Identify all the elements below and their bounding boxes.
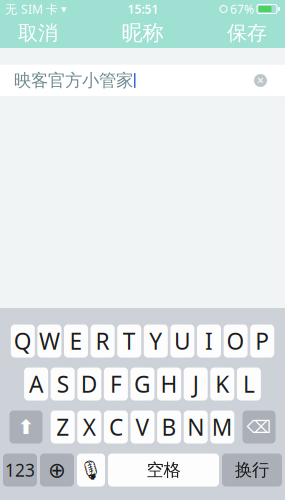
button[interactable]: U [170, 324, 194, 357]
button[interactable]: G [130, 367, 154, 400]
button[interactable]: Shift [9, 410, 42, 443]
button[interactable]: 换行 [222, 453, 282, 486]
button[interactable]: Delete [242, 410, 275, 443]
staticText: B [162, 412, 177, 442]
button[interactable]: F [104, 367, 128, 400]
staticText: S [57, 369, 69, 399]
button[interactable]: Q [11, 324, 35, 357]
button[interactable]: K [210, 367, 234, 400]
button[interactable]: L [237, 367, 261, 400]
button[interactable]: P [250, 324, 274, 357]
staticText: ✕ [256, 75, 264, 86]
button[interactable]: D [77, 367, 101, 400]
button[interactable]: V [130, 410, 154, 443]
button[interactable]: W [37, 324, 61, 357]
button[interactable]: M [210, 410, 234, 443]
button[interactable]: 取消 [6, 15, 70, 51]
staticText: 无 SIM 卡 [5, 1, 58, 17]
staticText: Y [149, 326, 162, 356]
button[interactable]: T [117, 324, 141, 357]
staticText: 映客官方小管家 [14, 70, 133, 91]
staticText: N [187, 412, 204, 442]
staticText: Z [56, 412, 69, 442]
button[interactable]: Next keyboard [40, 453, 74, 486]
staticText: O [227, 326, 245, 356]
staticText: Q [14, 326, 32, 356]
staticText: G [134, 369, 151, 399]
staticText: E [69, 326, 82, 356]
button[interactable]: A [24, 367, 48, 400]
staticText: ▾ [61, 3, 66, 15]
staticText: 🎙 [79, 459, 103, 481]
staticText: 空格 [146, 459, 180, 481]
staticText: U [174, 326, 191, 356]
staticText: K [215, 369, 229, 399]
staticText: R [96, 326, 110, 356]
staticText: I [205, 326, 213, 356]
button[interactable]: Dictation [77, 453, 105, 486]
staticText: X [83, 412, 96, 442]
staticText: 15:51 [127, 1, 158, 17]
staticText: 67% [230, 1, 254, 17]
staticText: ⌫ [246, 417, 271, 437]
staticText: C [109, 412, 123, 442]
staticText: P [255, 326, 269, 356]
staticText: 取消 [18, 21, 58, 45]
staticText: L [243, 369, 255, 399]
button[interactable]: C [104, 410, 128, 443]
button[interactable]: E [64, 324, 88, 357]
button[interactable]: Y [144, 324, 168, 357]
button[interactable]: Z [51, 410, 75, 443]
staticText: ⊕ [48, 458, 66, 482]
button[interactable]: 映客官方小管家 [0, 64, 285, 96]
button[interactable]: X [77, 410, 101, 443]
button[interactable]: R [91, 324, 115, 357]
button[interactable]: 保存 [215, 15, 279, 51]
staticText: A [29, 369, 43, 399]
button[interactable]: O [224, 324, 248, 357]
button[interactable]: S [51, 367, 75, 400]
button[interactable]: B [157, 410, 181, 443]
staticText: ⬆ [17, 416, 34, 438]
staticText: V [135, 412, 149, 442]
staticText: 换行 [235, 459, 269, 481]
staticText: W [39, 326, 60, 356]
staticText: 123 [5, 458, 35, 481]
staticText: F [110, 369, 122, 399]
button[interactable]: H [157, 367, 181, 400]
staticText: 昵称 [121, 20, 163, 46]
staticText: 保存 [227, 21, 267, 45]
staticText: M [212, 412, 233, 442]
staticText: H [161, 369, 178, 399]
button[interactable]: Clear text [250, 70, 271, 91]
staticText: T [123, 326, 136, 356]
button[interactable]: N [184, 410, 208, 443]
button[interactable]: 123 [3, 453, 37, 486]
staticText: D [81, 369, 98, 399]
staticText: J [193, 369, 199, 399]
button[interactable]: J [184, 367, 208, 400]
button[interactable]: I [197, 324, 221, 357]
button[interactable]: 空格 [108, 453, 219, 486]
